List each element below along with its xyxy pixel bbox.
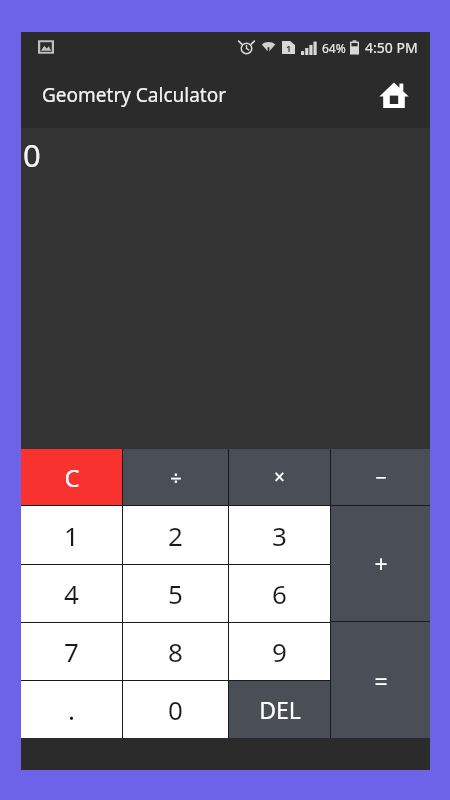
staticText: 4 [64,576,79,611]
button[interactable]: DEL [229,681,330,738]
staticText: − [375,464,387,491]
button[interactable]: 8 [123,623,228,680]
button[interactable]: . [21,681,122,738]
staticText: 64% [322,40,346,56]
staticText: ÷ [170,464,182,491]
button[interactable]: ÷ [123,449,228,505]
staticText: × [274,464,285,490]
staticText: 3 [272,518,287,553]
button[interactable]: 7 [21,623,122,680]
staticText: C [64,461,80,494]
button[interactable]: 2 [123,506,228,564]
staticText: = [374,665,388,696]
button[interactable]: C [21,449,122,505]
staticText: 8 [168,634,183,669]
button[interactable]: × [229,449,330,505]
staticText: 6 [272,576,287,611]
button[interactable]: = [331,622,430,738]
staticText: Geometry Calculator [42,82,227,108]
staticText: 0 [23,134,41,176]
button[interactable]: 5 [123,565,228,622]
staticText: 1 [286,42,292,54]
button[interactable]: 0 [123,681,228,738]
staticText: DEL [259,694,301,725]
staticText: 4:50 PM [365,38,418,57]
staticText: 2 [168,518,183,553]
button[interactable]: 4 [21,565,122,622]
button[interactable]: Home [372,73,416,117]
staticText: 5 [168,576,183,611]
staticText: 1 [64,518,79,553]
button[interactable]: 3 [229,506,330,564]
staticText: + [374,548,388,579]
button[interactable]: − [331,449,430,505]
staticText: . [68,692,75,727]
button[interactable]: 1 [21,506,122,564]
button[interactable]: 9 [229,623,330,680]
staticText: 0 [168,692,183,727]
button[interactable]: + [331,506,430,621]
staticText: 9 [272,634,287,669]
button[interactable]: 6 [229,565,330,622]
staticText: 7 [64,634,79,669]
